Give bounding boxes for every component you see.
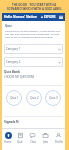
- button[interactable]: Home: [2, 132, 14, 150]
- button[interactable]: Menu: [58, 14, 64, 20]
- staticText: Quiz 1: [10, 96, 19, 100]
- staticText: CHOOSE MY QUESTIONS: [4, 75, 35, 79]
- button[interactable]: Account: [39, 15, 57, 19]
- button[interactable]: Category 2: [4, 57, 63, 67]
- staticText: Profile: [55, 140, 63, 144]
- staticText: Welcome to nursing quizzes, a place wher…: [5, 29, 62, 38]
- staticText: Quiz Bank: [4, 70, 21, 74]
- staticText: Quiz 3: [49, 96, 58, 100]
- staticText: EXPLORE: [44, 15, 56, 19]
- button[interactable]: Quiz: [14, 132, 26, 150]
- staticText: Quiz: [17, 140, 23, 144]
- staticText: Signals N: [4, 120, 19, 124]
- staticText: Jobs: [43, 140, 49, 144]
- button[interactable]: Category 1: [4, 44, 63, 54]
- staticText: THE GOOD - YOU START WITH A: [12, 3, 57, 7]
- button[interactable]: Quiz 2: [26, 90, 42, 106]
- button[interactable]: Profile: [52, 132, 65, 150]
- button[interactable]: Quiz 1: [6, 90, 22, 106]
- staticText: Hello Nurses' Nation: [4, 15, 37, 19]
- staticText: Category 1: [6, 47, 21, 51]
- staticText: Quiz 2: [30, 96, 39, 100]
- staticText: Quiz: [5, 24, 12, 28]
- staticText: Category 2: [6, 60, 21, 64]
- button[interactable]: Chat: [26, 132, 39, 150]
- button[interactable]: Quiz 3: [45, 90, 61, 106]
- button[interactable]: Jobs: [39, 132, 52, 150]
- staticText: Chat: [30, 140, 36, 144]
- staticText: Home: [4, 140, 12, 144]
- staticText: SCENARIO WHICH WITH A QUIZ LABEL: [7, 7, 62, 11]
